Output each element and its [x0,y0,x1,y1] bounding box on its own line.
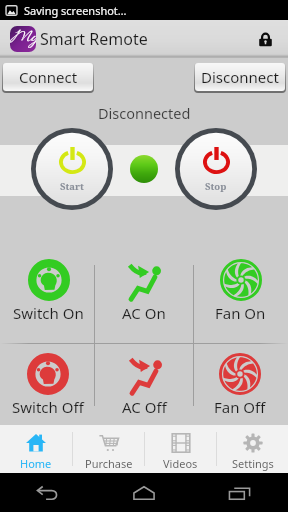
button[interactable]: Videos [145,425,216,473]
staticText: Stop [205,180,227,193]
staticText: Home [20,456,52,471]
staticText: Switch Off [12,397,84,417]
button[interactable]: Fan On [192,255,288,327]
staticText: Disconnected [98,103,191,121]
staticText: Fan Off [214,397,266,417]
staticText: AC Off [122,397,167,417]
button[interactable]: Lock [250,24,280,54]
button[interactable]: Disconnect [195,63,285,91]
other: Home [132,481,156,505]
staticText: Fan On [215,303,266,323]
button[interactable]: Switch On [0,255,96,327]
button[interactable]: Home [0,425,72,473]
other: Recents [228,481,252,505]
button[interactable]: AC Off [96,349,192,421]
staticText: Saving screenshot… [24,3,127,18]
staticText: Start [60,180,84,193]
button[interactable]: Stop [175,128,257,210]
button[interactable]: Switch Off [0,349,96,421]
button[interactable]: Purchase [73,425,144,473]
button[interactable]: Fan Off [192,349,288,421]
button[interactable]: AC On [96,255,192,327]
staticText: My [10,26,36,50]
staticText: Connect [19,67,78,87]
button[interactable]: Start [31,128,113,210]
other: Back [36,481,60,505]
staticText: Switch On [13,303,84,323]
staticText: AC On [122,303,166,323]
staticText: Purchase [85,456,133,471]
staticText: Disconnect [201,67,279,87]
staticText: Videos [163,456,198,471]
staticText: Smart Remote [40,28,148,50]
button[interactable]: Connect [3,63,93,91]
staticText: Settings [232,456,274,471]
button[interactable]: Settings [217,425,288,473]
